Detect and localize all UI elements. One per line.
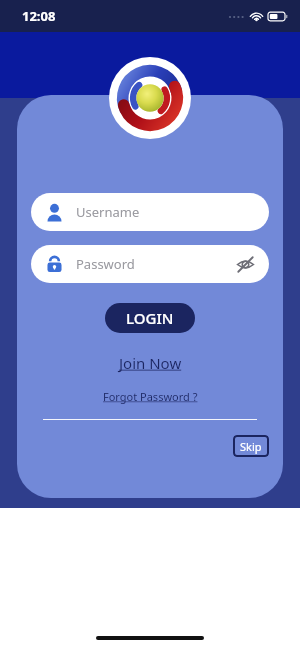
button[interactable]: LOGIN (105, 303, 195, 333)
button[interactable]: User (31, 193, 269, 231)
staticText: 12:08 (22, 7, 56, 25)
button[interactable]: Lock (31, 245, 269, 283)
other: Toggle password visibility (236, 255, 255, 274)
staticText: Forgot Password ? (103, 389, 198, 404)
staticText: LOGIN (126, 308, 174, 328)
button[interactable]: Join Now (113, 351, 188, 375)
staticText: Username (76, 203, 140, 221)
other: User (45, 203, 64, 222)
staticText: Join Now (119, 353, 182, 373)
button[interactable]: Forgot Password ? (97, 387, 204, 406)
staticText: Password (76, 255, 135, 273)
other: Lock (45, 255, 64, 274)
staticText: Skip (240, 439, 262, 454)
button[interactable]: Skip (233, 435, 269, 457)
